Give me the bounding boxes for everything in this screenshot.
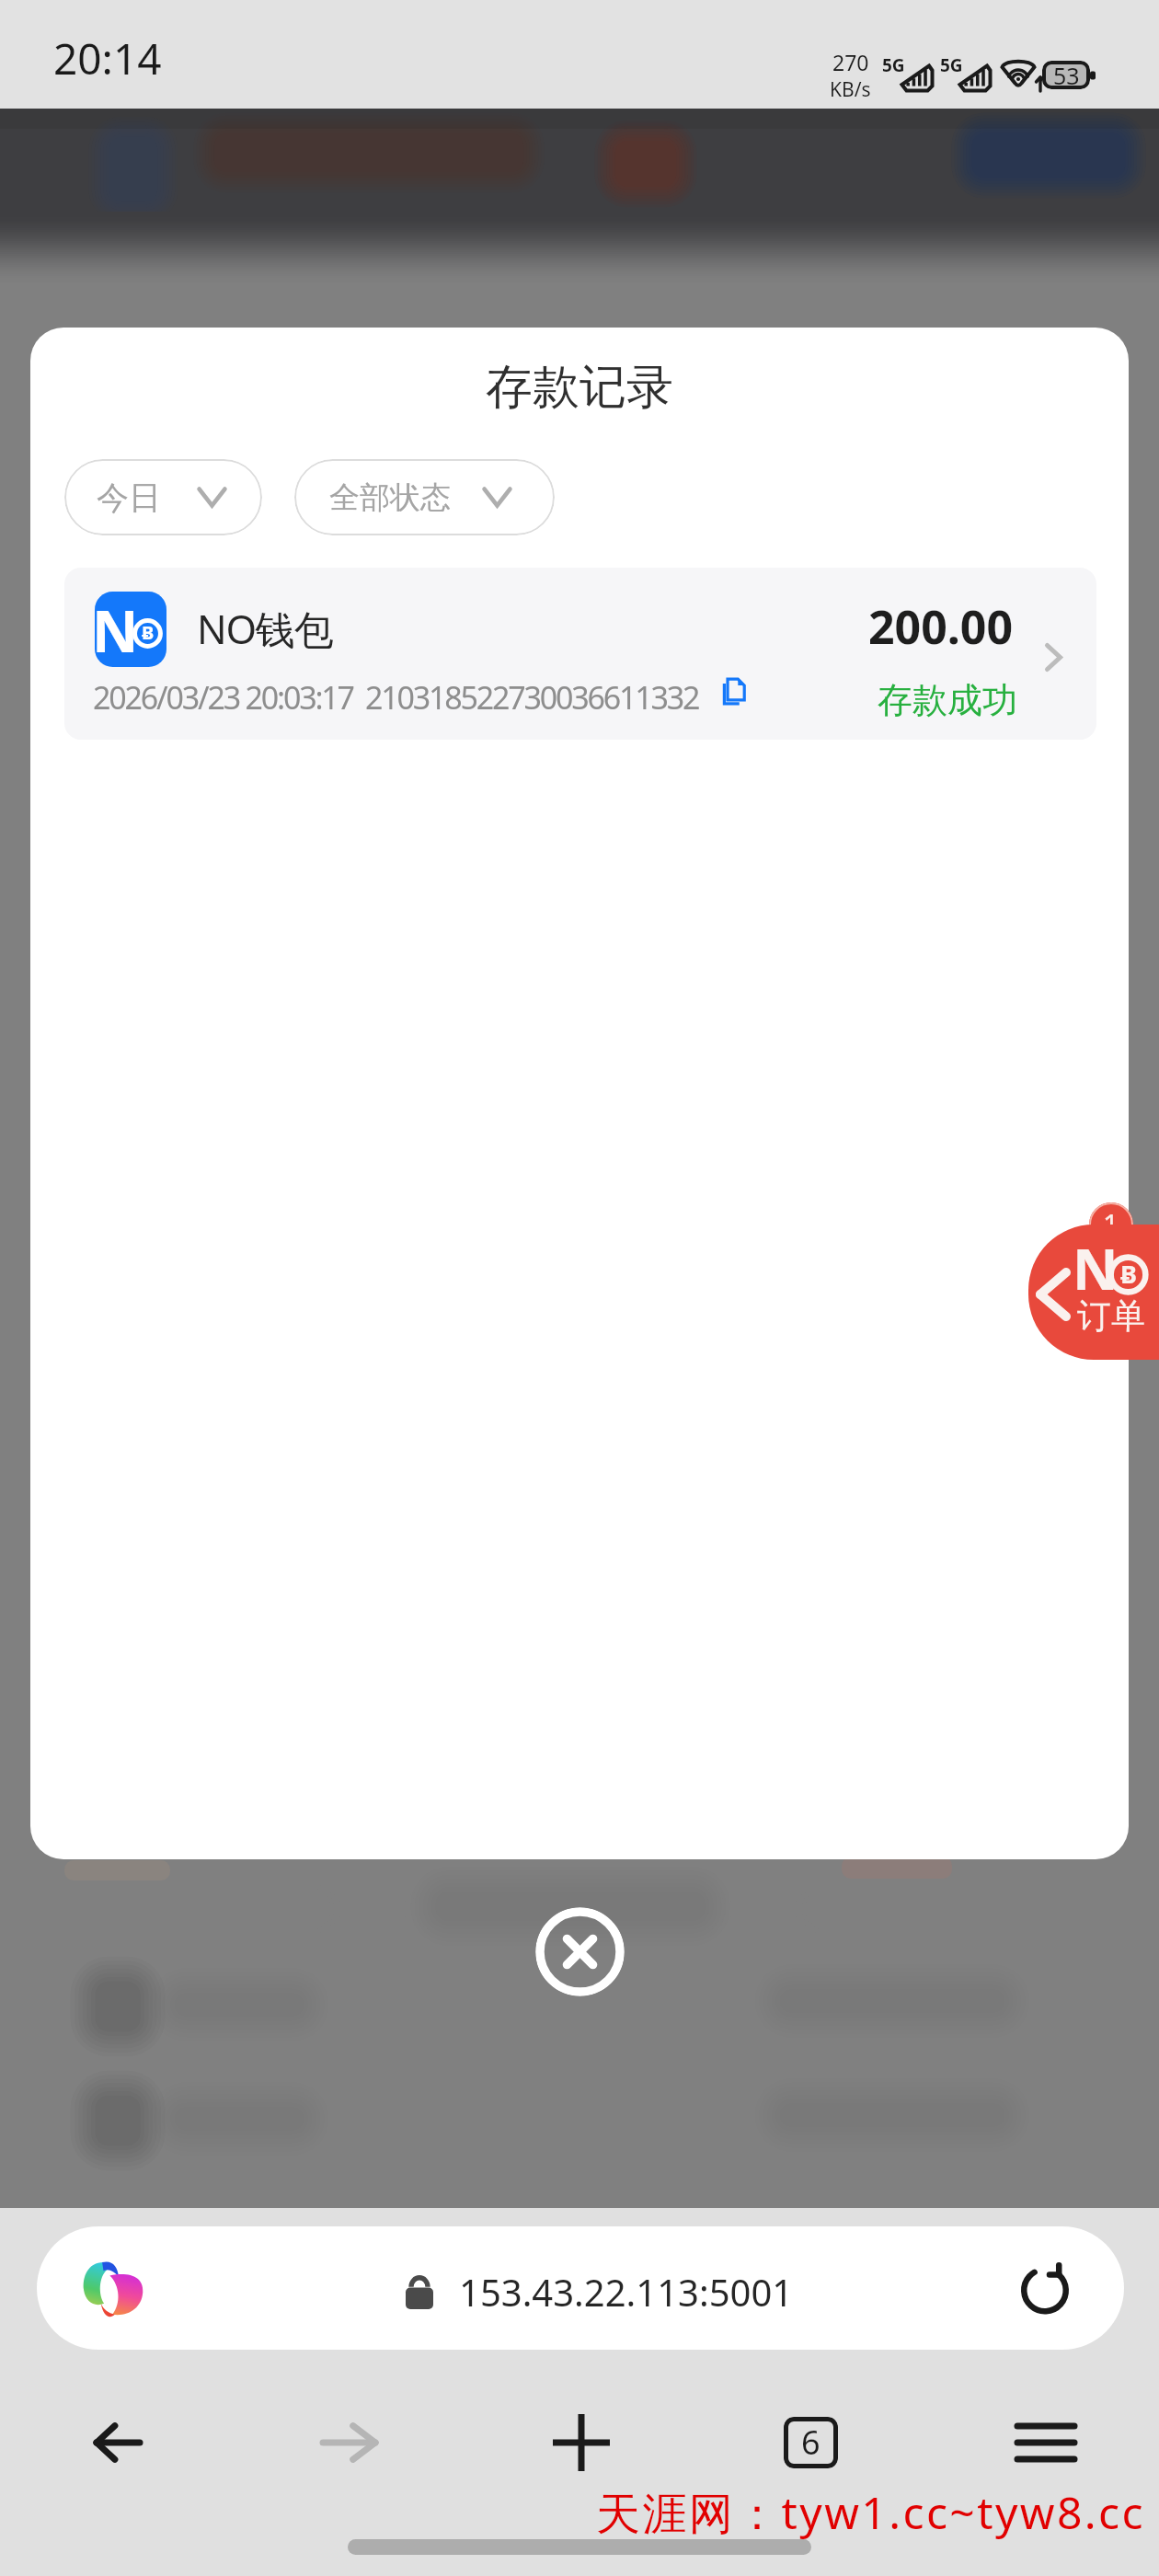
button[interactable]: N	[64, 568, 1096, 740]
staticText: 6	[801, 2420, 820, 2465]
staticText: Ƀ	[142, 620, 155, 645]
button[interactable]: Tabs	[755, 2387, 866, 2498]
staticText: 20:14	[53, 29, 162, 87]
staticText: 5G	[940, 53, 963, 77]
staticText: 全部状态	[329, 478, 451, 517]
button[interactable]: Forward	[294, 2387, 405, 2498]
staticText: Ƀ	[1120, 1257, 1137, 1291]
button[interactable]: Orders	[1028, 1225, 1159, 1360]
button[interactable]: Menu	[991, 2387, 1101, 2498]
button[interactable]: Close	[535, 1907, 625, 1996]
button[interactable]: Back	[63, 2387, 173, 2498]
staticText: 200.00	[868, 595, 1014, 658]
staticText: KB/s	[830, 76, 871, 103]
staticText: N	[95, 592, 139, 667]
button[interactable]: 全部状态	[294, 459, 555, 535]
staticText: N	[1073, 1230, 1119, 1306]
staticText: 存款成功	[878, 678, 1017, 722]
staticText: 53	[1053, 61, 1080, 88]
button[interactable]: 今日	[64, 459, 262, 535]
staticText: 153.43.22.113:5001	[459, 2267, 794, 2317]
staticText: 1	[1103, 1205, 1119, 1243]
staticText: 存款记录	[30, 358, 1129, 417]
button[interactable]: New tab	[526, 2387, 637, 2498]
staticText: 2026/03/23 20:03:17 21031852273003661133…	[93, 676, 699, 719]
staticText: NO钱包	[197, 602, 333, 656]
staticText: 今日	[97, 477, 161, 518]
staticText: 天涯网：tyw1.cc~tyw8.cc	[596, 2482, 1145, 2543]
button[interactable]: Reload	[1009, 2254, 1081, 2326]
button[interactable]: 153.43.22.113:5001	[37, 2226, 1124, 2350]
staticText: 订单	[1077, 1294, 1145, 1338]
staticText: 270	[832, 48, 869, 76]
staticText: 5G	[882, 53, 905, 77]
